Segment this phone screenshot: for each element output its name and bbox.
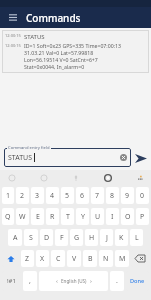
staticText: W (19, 212, 26, 222)
button[interactable]: U (91, 208, 104, 225)
button[interactable]: Keyboard settings (102, 172, 113, 183)
button[interactable]: I (106, 208, 119, 225)
staticText: O (125, 212, 131, 222)
staticText: 4 (50, 191, 55, 201)
button[interactable]: N (99, 250, 113, 267)
staticText: D (44, 233, 50, 243)
button[interactable]: Backspace (131, 250, 149, 267)
button[interactable]: K (115, 229, 128, 246)
button[interactable]: 8 (106, 187, 119, 204)
staticText: V (72, 254, 77, 264)
button[interactable]: F (55, 229, 68, 246)
staticText: R (50, 212, 55, 222)
button[interactable]: A (8, 229, 22, 246)
button[interactable]: B (83, 250, 97, 267)
button[interactable]: 9 (121, 187, 134, 204)
staticText: 6 (80, 191, 85, 201)
staticText: STATUS (24, 33, 45, 41)
staticText: N (103, 254, 109, 264)
button[interactable]: E (31, 208, 44, 225)
button[interactable]: X (36, 250, 49, 267)
staticText: K (119, 233, 124, 243)
staticText: H (89, 233, 95, 243)
button[interactable]: Y (76, 208, 89, 225)
staticText: 8 (110, 191, 115, 201)
button[interactable]: M (115, 250, 129, 267)
button[interactable]: 3 (31, 187, 44, 204)
staticText: A (13, 233, 18, 243)
staticText: B (88, 254, 93, 264)
button[interactable]: D (40, 229, 53, 246)
button[interactable]: Z (21, 250, 34, 267)
staticText: English (US) (61, 278, 87, 284)
staticText: 9 (125, 191, 130, 201)
staticText: Z (25, 254, 30, 264)
staticText: S (29, 233, 33, 243)
button[interactable]: V (67, 250, 81, 267)
button[interactable]: H (85, 229, 98, 246)
button[interactable]: O (121, 208, 134, 225)
button[interactable]: Emoji (6, 172, 17, 183)
button[interactable]: , (23, 271, 37, 291)
button[interactable]: More options (134, 172, 145, 183)
staticText: STATUS (8, 153, 33, 163)
button[interactable]: P (136, 208, 149, 225)
button[interactable]: C (51, 250, 65, 267)
staticText: Lon=56.19514 V=0 SatCnt=6+7 (24, 56, 98, 63)
staticText: C (56, 254, 61, 264)
staticText: , (29, 276, 31, 286)
button[interactable]: J (100, 229, 113, 246)
staticText: M (119, 254, 126, 264)
staticText: 3 (35, 191, 40, 201)
staticText: X (40, 254, 45, 264)
staticText: Stat=0x0044, In_alarm=0 (24, 63, 85, 70)
staticText: U (95, 212, 101, 222)
button[interactable]: 2 (16, 187, 29, 204)
button[interactable]: R (46, 208, 59, 225)
button[interactable]: Open navigation menu (6, 11, 20, 25)
button[interactable]: 5 (61, 187, 74, 204)
button[interactable]: S (24, 229, 38, 246)
staticText: I (111, 212, 114, 222)
button[interactable]: G (70, 229, 83, 246)
staticText: . (116, 276, 118, 286)
staticText: J (106, 233, 108, 243)
staticText: 1 (6, 191, 11, 201)
staticText: Done (130, 277, 145, 285)
button[interactable]: 6 (76, 187, 89, 204)
staticText: Command entry field (8, 145, 50, 151)
button[interactable]: 7 (91, 187, 104, 204)
staticText: ID=1 Soft=0x23 GPS=335 Time=07:00:13 (24, 42, 121, 49)
staticText: 5 (65, 191, 70, 201)
staticText: 12:00:15 (5, 33, 21, 38)
button[interactable]: Stickers (38, 172, 49, 183)
button[interactable]: Space, English (US) (39, 271, 108, 291)
staticText: E (36, 212, 40, 222)
button[interactable]: Clear text (119, 153, 128, 162)
staticText: !#1 (7, 277, 16, 285)
button[interactable]: Done (126, 271, 149, 291)
staticText: Q (5, 212, 11, 222)
staticText: 7 (95, 191, 100, 201)
button[interactable]: STATUS (4, 148, 131, 167)
button[interactable]: Shift (2, 250, 19, 267)
button[interactable]: . (110, 271, 124, 291)
staticText: L (135, 233, 139, 243)
staticText: 2 (20, 191, 25, 201)
button[interactable]: Q (2, 208, 14, 225)
button[interactable]: Voice input (70, 172, 81, 183)
staticText: 0 (140, 191, 145, 201)
staticText: 12:00:15 (5, 43, 21, 48)
staticText: › (90, 277, 92, 285)
button[interactable]: 0 (136, 187, 149, 204)
staticText: F (60, 233, 64, 243)
button[interactable]: !#1 (2, 271, 21, 291)
staticText: T (66, 212, 70, 222)
button[interactable]: Send command (134, 150, 148, 166)
button[interactable]: 4 (46, 187, 59, 204)
staticText: P (140, 212, 145, 222)
button[interactable]: 1 (2, 187, 14, 204)
button[interactable]: T (61, 208, 74, 225)
button[interactable]: L (130, 229, 143, 246)
button[interactable]: W (16, 208, 29, 225)
